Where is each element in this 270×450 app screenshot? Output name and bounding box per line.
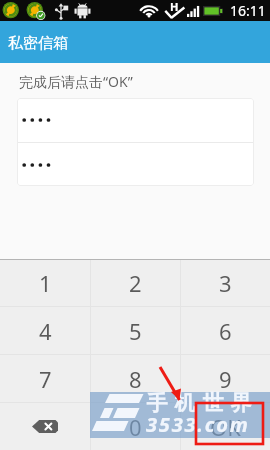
button[interactable]: 1: [0, 260, 90, 306]
button[interactable]: OK: [181, 403, 270, 450]
staticText: 7: [39, 364, 52, 394]
button[interactable]: [17, 143, 254, 186]
staticText: 1: [39, 268, 52, 298]
staticText: 8: [129, 364, 142, 394]
staticText: 完成后请点击“OK”: [19, 72, 133, 91]
button[interactable]: Delete: [0, 403, 90, 450]
button[interactable]: 6: [181, 307, 270, 354]
button[interactable]: 2: [91, 260, 180, 306]
button[interactable]: 5: [91, 307, 180, 354]
staticText: 16:11: [230, 1, 266, 20]
button[interactable]: 3: [181, 260, 270, 306]
button[interactable]: [17, 98, 254, 142]
staticText: OK: [210, 412, 241, 442]
staticText: 0: [129, 412, 142, 442]
staticText: 6: [219, 316, 232, 346]
staticText: 4: [39, 316, 52, 346]
staticText: H: [170, 0, 179, 14]
button[interactable]: 4: [0, 307, 90, 354]
staticText: 5: [129, 316, 142, 346]
button[interactable]: 9: [181, 355, 270, 402]
staticText: 3: [219, 268, 232, 298]
staticText: 2: [129, 268, 142, 298]
button[interactable]: 0: [91, 403, 180, 450]
staticText: 手机世界: [143, 390, 255, 416]
button[interactable]: 7: [0, 355, 90, 402]
button[interactable]: 8: [91, 355, 180, 402]
staticText: 9: [219, 364, 232, 394]
staticText: 私密信箱: [8, 34, 68, 53]
staticText: 3533.com: [146, 411, 250, 438]
